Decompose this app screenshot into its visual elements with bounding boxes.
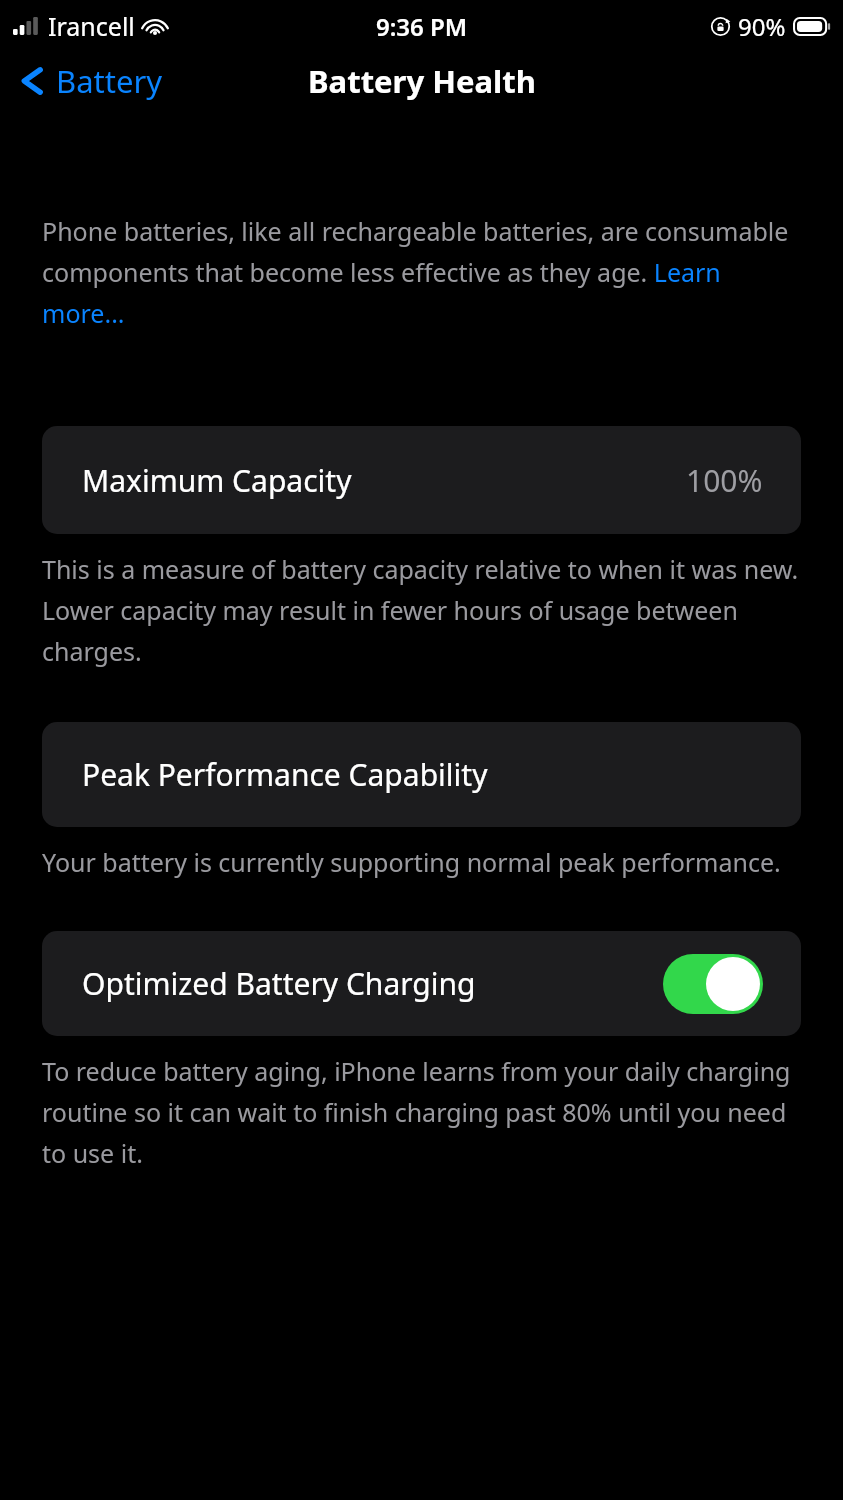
button[interactable]: Optimized Battery Charging toggle — [663, 954, 763, 1014]
staticText: To reduce battery aging, iPhone learns f… — [42, 1054, 803, 1171]
staticText: Battery Health — [308, 60, 536, 102]
staticText: Irancell — [48, 9, 135, 43]
button[interactable]: Maximum Capacity — [42, 426, 801, 534]
staticText: Optimized Battery Charging — [82, 963, 476, 1004]
staticText: 100% — [686, 460, 763, 501]
staticText: 90% — [738, 10, 786, 43]
staticText: Phone batteries, like all rechargeable b… — [42, 214, 803, 331]
button[interactable]: Optimized Battery Charging — [42, 931, 801, 1036]
staticText: This is a measure of battery capacity re… — [42, 552, 803, 669]
staticText: Battery — [56, 60, 163, 102]
staticText: 9:36 PM — [376, 10, 468, 43]
staticText: Peak Performance Capability — [82, 754, 488, 795]
button[interactable]: Peak Performance Capability — [42, 722, 801, 827]
staticText: Your battery is currently supporting nor… — [42, 845, 803, 879]
staticText: Maximum Capacity — [82, 460, 352, 501]
button[interactable]: Battery — [0, 56, 173, 106]
